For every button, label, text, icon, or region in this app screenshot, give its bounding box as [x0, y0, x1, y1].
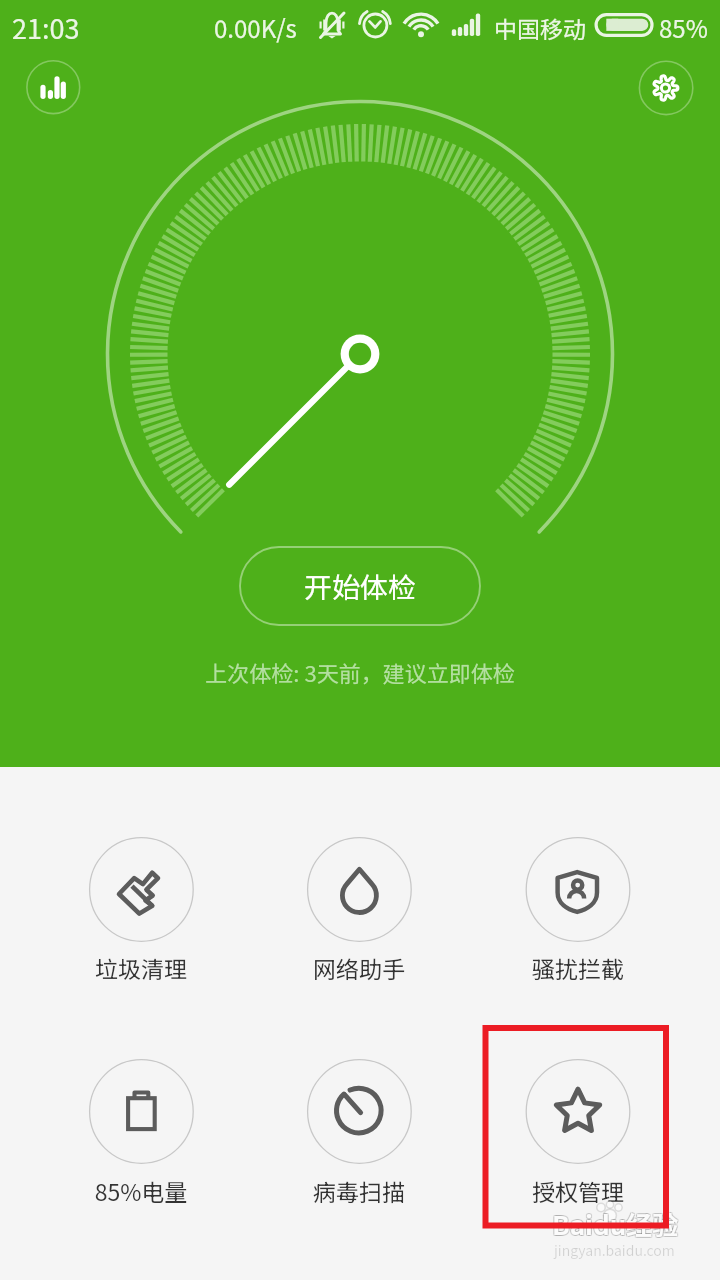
staticText: 授权管理	[488, 1174, 668, 1207]
button[interactable]: 85%电量	[51, 1050, 231, 1215]
staticText: Baidu经验	[553, 1206, 680, 1244]
staticText: Baidu经验	[552, 1205, 679, 1243]
staticText: 上次体检: 3天前，建议立即体检	[0, 656, 720, 688]
button[interactable]: Statistics	[27, 61, 80, 114]
staticText: Baidu经验	[552, 1204, 679, 1242]
button[interactable]: 授权管理	[488, 1050, 668, 1215]
staticText: 骚扰拦截	[488, 951, 668, 984]
staticText: Baidu经验	[551, 1205, 678, 1243]
staticText: Baidu经验	[552, 1206, 679, 1244]
staticText: Baidu经验	[551, 1204, 678, 1242]
staticText: 病毒扫描	[269, 1174, 449, 1207]
staticText: 85%	[659, 10, 708, 45]
button[interactable]: 网络助手	[269, 827, 449, 992]
staticText: 0.00K/s	[214, 10, 297, 45]
staticText: Baidu经验	[552, 1205, 679, 1243]
button[interactable]: 骚扰拦截	[488, 827, 668, 992]
staticText: Baidu经验	[551, 1206, 678, 1244]
button[interactable]: 开始体检	[239, 546, 481, 626]
staticText: Baidu经验	[553, 1205, 680, 1243]
staticText: 21:03	[12, 8, 80, 47]
staticText: 垃圾清理	[51, 951, 231, 984]
button[interactable]: 病毒扫描	[269, 1050, 449, 1215]
staticText: 中国移动	[494, 11, 586, 44]
button[interactable]: 垃圾清理	[51, 827, 231, 992]
staticText: jingyan.baidu.com	[554, 1240, 675, 1260]
button[interactable]: Settings	[640, 61, 693, 114]
staticText: Baidu经验	[553, 1204, 680, 1242]
staticText: 85%电量	[51, 1174, 231, 1207]
staticText: 网络助手	[269, 951, 449, 984]
staticText: 开始体检	[304, 566, 417, 607]
